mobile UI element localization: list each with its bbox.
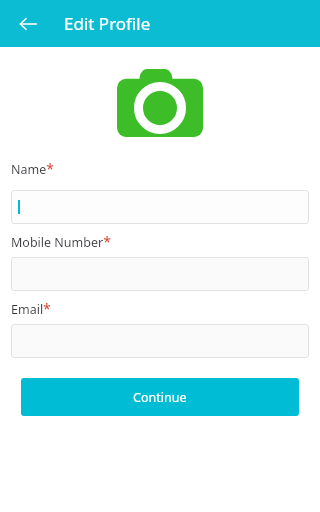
staticText: Email* xyxy=(11,299,51,318)
staticText: Name* xyxy=(11,159,54,178)
button[interactable]: Back xyxy=(8,4,48,44)
staticText: Continue xyxy=(133,389,187,406)
button[interactable] xyxy=(11,190,309,224)
staticText: Mobile Number* xyxy=(11,232,111,251)
button[interactable] xyxy=(11,324,309,358)
button[interactable] xyxy=(11,257,309,291)
button[interactable]: Continue xyxy=(21,378,299,416)
staticText: Edit Profile xyxy=(64,12,151,35)
